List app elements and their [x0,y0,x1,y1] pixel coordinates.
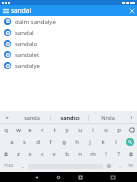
staticText: f [49,138,52,146]
staticText: e [28,126,32,134]
staticText: sandal [11,6,32,15]
button[interactable]: c [36,148,48,160]
button[interactable]: l [109,136,122,148]
button[interactable]: m [86,148,99,160]
button[interactable]: g [57,136,70,148]
button[interactable]: D [0,16,137,27]
button[interactable]: d [31,136,44,148]
staticText: o [104,126,108,134]
staticText: sandal [15,29,34,37]
button[interactable]: sandalye [0,60,137,71]
staticText: sandıcı [60,114,80,121]
staticText: l [115,138,117,146]
staticText: TR [128,163,133,169]
button[interactable]: sandal [11,5,126,16]
button[interactable]: j [83,136,96,148]
button[interactable]: Search [123,136,137,148]
staticText: y [65,126,69,134]
staticText: r [41,126,44,134]
staticText: dalm sandalye [15,18,56,26]
button[interactable]: Emoji [103,160,115,172]
staticText: p [117,126,121,134]
staticText: Nrsla [101,114,115,121]
button[interactable]: . [115,160,124,172]
staticText: d [36,138,40,146]
button[interactable]: q [0,124,12,136]
staticText: sanda [24,114,40,121]
staticText: z [17,150,20,158]
button[interactable]: p [112,124,125,136]
button[interactable]: Clear query [126,5,137,16]
staticText: q [4,126,8,134]
button[interactable]: Keyboard [102,172,124,182]
button[interactable]: b [60,148,73,160]
staticText: . [119,162,121,170]
button[interactable]: z [12,148,24,160]
button[interactable]: h [70,136,83,148]
button[interactable]: ? [112,148,125,160]
button[interactable]: sandal [0,27,137,38]
staticText: sandalye [15,62,40,70]
staticText: b [65,150,69,158]
staticText: a [10,138,14,146]
button[interactable]: sanda [13,111,50,124]
staticText: x [28,150,32,158]
staticText: k [101,138,105,146]
button[interactable]: Shift [125,148,137,160]
staticText: i [92,126,94,134]
button[interactable]: k [96,136,109,148]
button[interactable]: Shift [0,148,12,160]
button[interactable]: sandıcı [51,111,88,124]
button[interactable]: s [18,136,31,148]
button[interactable]: Menu [0,5,11,16]
staticText: j [89,138,91,146]
button[interactable]: u [73,124,86,136]
staticText: c [41,150,44,158]
button[interactable]: More suggestions [126,111,137,124]
button[interactable]: Nrsla [89,111,126,124]
staticText: s [23,138,26,146]
button[interactable]: f [44,136,57,148]
button[interactable]: x [24,148,36,160]
button[interactable]: sandalet [0,49,137,60]
button[interactable]: Backspace [125,124,137,136]
staticText: n [78,150,82,158]
staticText: D [6,18,10,25]
button[interactable]: Voice input [0,111,13,124]
button[interactable]: y [60,124,73,136]
button[interactable]: ?123 [0,160,17,172]
staticText: m [90,150,96,158]
button[interactable]: , [17,160,28,172]
button[interactable]: Recents [69,172,91,182]
button[interactable]: n [73,148,86,160]
button[interactable]: Language [124,160,137,172]
button[interactable]: i [86,124,99,136]
staticText: h [75,138,79,146]
staticText: sandalet [15,51,40,59]
staticText: ? [117,150,120,158]
button[interactable]: w [12,124,24,136]
button[interactable]: r [36,124,48,136]
button[interactable]: Home [47,172,69,182]
button[interactable]: v [48,148,60,160]
staticText: t [53,126,56,134]
button[interactable]: e [24,124,36,136]
staticText: sandalo [15,40,38,48]
staticText: v [52,150,56,158]
staticText: ?123 [4,163,14,169]
button[interactable]: sandalo [0,38,137,49]
staticText: g [62,138,66,146]
staticText: w [16,126,21,134]
button[interactable]: t [48,124,60,136]
staticText: ! [105,150,107,158]
button[interactable]: o [99,124,112,136]
staticText: u [78,126,82,134]
staticText: , [22,162,24,170]
button[interactable]: a [5,136,18,148]
button[interactable]: ! [99,148,112,160]
button[interactable]: Back [25,172,47,182]
